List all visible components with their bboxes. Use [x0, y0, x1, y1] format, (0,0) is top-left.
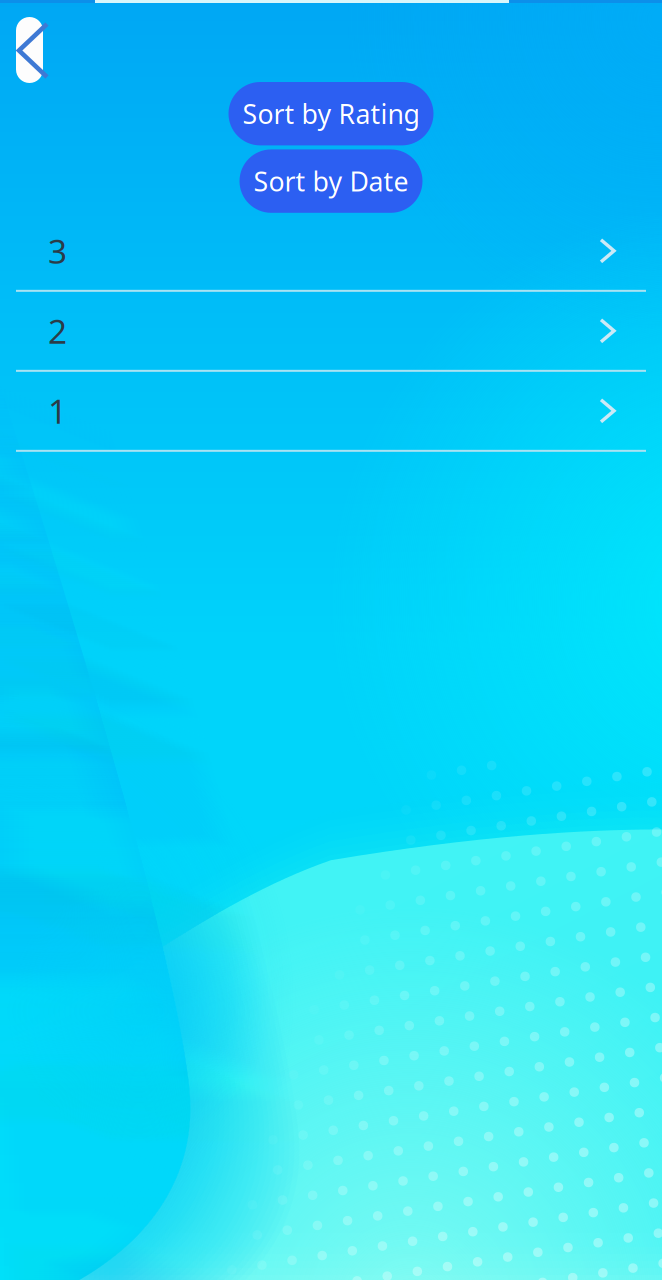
- button[interactable]: 1: [0, 372, 662, 452]
- button[interactable]: 3: [0, 212, 662, 292]
- button[interactable]: Sort by Rating: [228, 82, 433, 145]
- staticText: Sort by Date: [253, 163, 408, 199]
- staticText: 3: [48, 229, 67, 273]
- button[interactable]: 2: [0, 292, 662, 372]
- staticText: Sort by Rating: [242, 96, 419, 131]
- staticText: 2: [48, 309, 67, 353]
- staticText: 1: [48, 389, 67, 433]
- button[interactable]: Back: [12, 17, 56, 83]
- button[interactable]: Sort by Date: [239, 149, 422, 213]
